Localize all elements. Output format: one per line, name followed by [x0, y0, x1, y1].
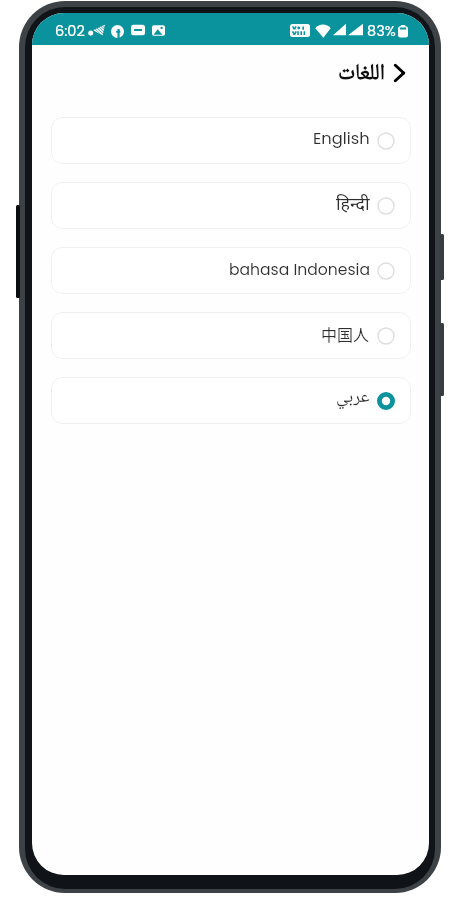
button[interactable]: عربي [51, 377, 411, 424]
button[interactable]: English [51, 117, 411, 164]
staticText: bahasa Indonesia [229, 259, 370, 281]
staticText: اللغات [338, 58, 385, 88]
staticText: 中国人 [321, 322, 370, 345]
button[interactable]: bahasa Indonesia [51, 247, 411, 294]
staticText: 6:02 [55, 21, 85, 41]
staticText: عربي [336, 385, 370, 410]
staticText: 83% [367, 21, 396, 41]
staticText: हिन्दी [336, 194, 370, 217]
button[interactable]: हिन्दी [51, 182, 411, 229]
button[interactable]: 中国人 [51, 312, 411, 359]
button[interactable]: Back [393, 62, 406, 84]
staticText: English [313, 127, 370, 150]
